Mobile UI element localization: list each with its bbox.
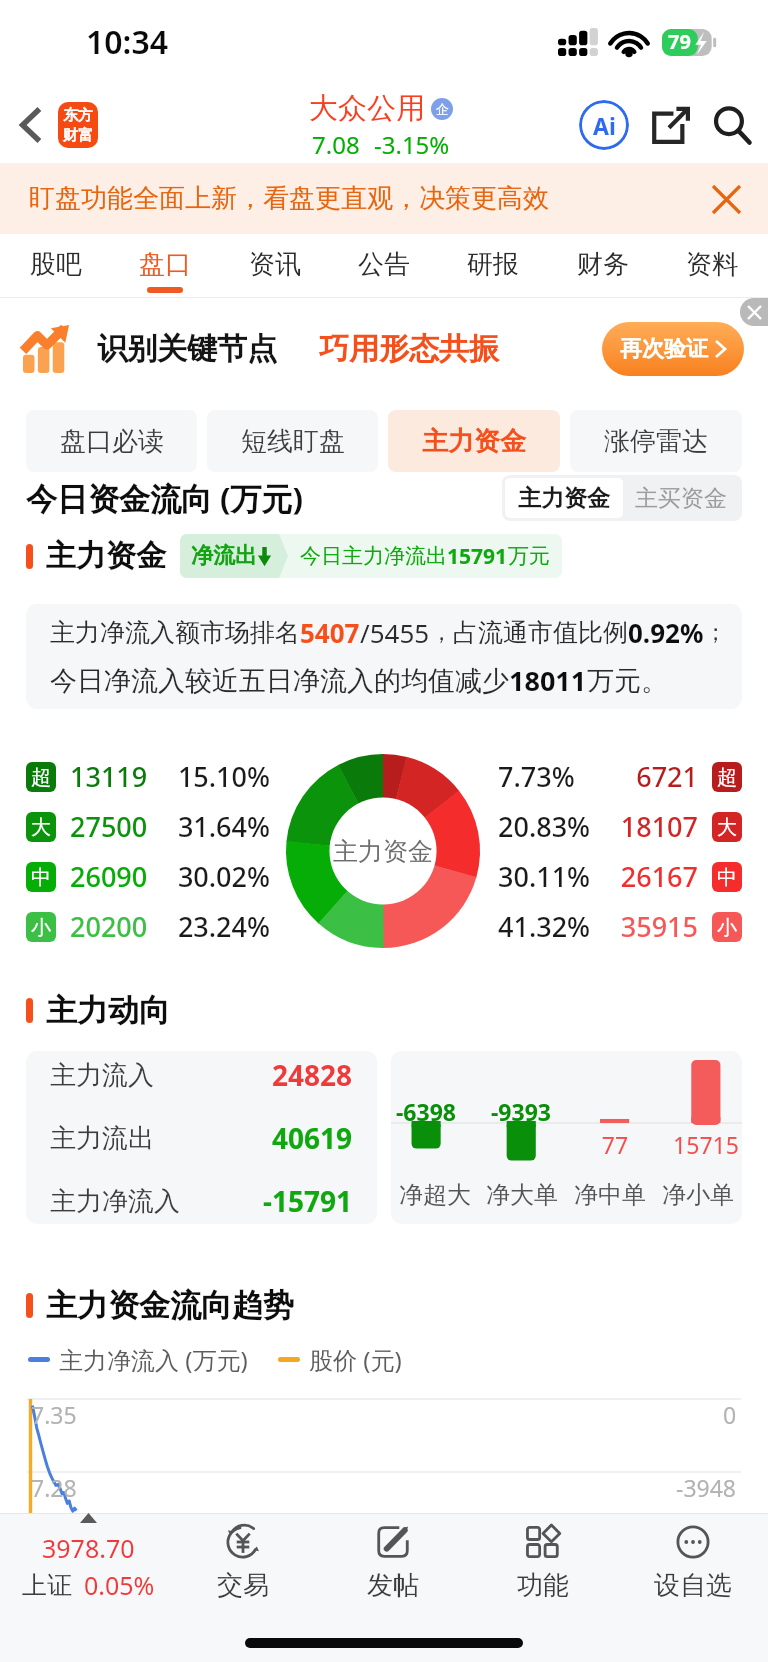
staticText: 净超大	[399, 1180, 471, 1210]
staticText: 资讯	[249, 248, 301, 281]
staticText: 主力资金	[422, 425, 526, 458]
button[interactable]: AI assistant	[576, 97, 632, 153]
staticText: 主力流入	[50, 1059, 154, 1092]
staticText: 净小单	[662, 1180, 734, 1210]
staticText: 41.32%	[498, 908, 598, 945]
staticText: 7.73%	[498, 758, 598, 795]
staticText: 79	[668, 28, 691, 55]
button[interactable]: 主力资金	[388, 410, 560, 472]
staticText: 股价 (元)	[309, 1343, 402, 1376]
button[interactable]: 功能	[468, 1512, 618, 1610]
button[interactable]: 交易	[168, 1512, 318, 1610]
staticText: 0.92%	[628, 615, 704, 650]
button[interactable]: 资讯	[249, 234, 301, 298]
staticText: 涨停雷达	[604, 425, 708, 458]
staticText: 26090	[70, 858, 170, 895]
staticText: 主力资金	[46, 537, 166, 575]
staticText: 研报	[467, 248, 519, 281]
button[interactable]: 股吧	[30, 234, 82, 298]
staticText: 40619	[272, 1119, 353, 1157]
staticText: 10:34	[86, 20, 169, 64]
button[interactable]: Close ad	[740, 298, 768, 326]
staticText: 主力资金	[333, 836, 433, 867]
button[interactable]: 发帖	[318, 1512, 468, 1610]
button[interactable]: 公告	[358, 234, 410, 298]
button[interactable]: 涨停雷达	[570, 410, 742, 472]
button[interactable]: 盯盘功能全面上新，看盘更直观，决策更高效	[0, 163, 768, 234]
staticText: 18011	[509, 662, 587, 699]
staticText: 主力净流入 (万元)	[59, 1343, 248, 1376]
staticText: 企	[436, 101, 449, 117]
staticText: 24828	[272, 1056, 353, 1094]
staticText: 主力流出	[50, 1122, 154, 1155]
staticText: 中	[717, 865, 737, 890]
button[interactable]: 再次验证	[602, 322, 744, 376]
staticText: ，	[430, 618, 453, 647]
staticText: 再次验证	[620, 335, 708, 363]
staticText: 上证	[22, 1570, 72, 1601]
staticText: 盯盘功能全面上新，看盘更直观，决策更高效	[29, 182, 549, 215]
staticText: 大众公用	[309, 90, 425, 127]
button[interactable]: Share	[642, 97, 698, 153]
staticText: 占流通市值比例	[453, 617, 628, 648]
button[interactable]: 资料	[686, 234, 738, 298]
staticText: 公告	[358, 248, 410, 281]
button[interactable]: East Money home	[58, 102, 98, 148]
staticText: 巧用形态共振	[319, 330, 499, 368]
staticText: 今日主力净流出	[300, 543, 447, 569]
staticText: 主力资金	[518, 484, 610, 513]
staticText: /5455	[360, 615, 430, 650]
button[interactable]: Back	[8, 102, 54, 148]
staticText: 短线盯盘	[241, 425, 345, 458]
staticText: 东方	[63, 106, 93, 125]
button[interactable]: 设自选	[618, 1512, 768, 1610]
button[interactable]: 短线盯盘	[207, 410, 378, 472]
button[interactable]: 财务	[577, 234, 629, 298]
staticText: 超	[717, 765, 737, 790]
staticText: 今日净流入较近五日净流入的均值减少	[50, 664, 509, 698]
staticText: 20.83%	[498, 808, 598, 845]
staticText: 18107	[598, 808, 698, 845]
button[interactable]: Search	[704, 97, 760, 153]
staticText: 大	[717, 815, 737, 840]
staticText: 盘口	[139, 248, 191, 281]
staticText: 万元。	[587, 664, 668, 698]
staticText: 净中单	[574, 1180, 646, 1210]
staticText: 净流出	[191, 542, 257, 570]
button[interactable]: 主买资金	[635, 478, 727, 518]
staticText: 27500	[70, 808, 170, 845]
staticText: 3978.70	[42, 1531, 135, 1565]
staticText: 主力动向	[46, 991, 170, 1030]
staticText: 小	[31, 915, 51, 940]
staticText: 13119	[70, 758, 170, 795]
staticText: 35915	[598, 908, 698, 945]
staticText: 23.24%	[170, 908, 270, 945]
staticText: 大	[31, 815, 51, 840]
staticText: 7.28	[31, 1472, 77, 1503]
staticText: 15.10%	[170, 758, 270, 795]
staticText: 万元	[508, 543, 550, 569]
staticText: 30.11%	[498, 858, 598, 895]
staticText: -3948	[676, 1472, 737, 1503]
button[interactable]: 研报	[467, 234, 519, 298]
staticText: 15791	[447, 542, 508, 571]
staticText: 主力资金流向趋势	[46, 1286, 294, 1325]
staticText: 20200	[70, 908, 170, 945]
staticText: -3.15%	[374, 128, 450, 161]
staticText: 识别关键节点	[97, 330, 277, 368]
button[interactable]: 3978.70	[4, 1508, 172, 1606]
staticText: 6721	[598, 758, 698, 795]
staticText: 小	[717, 915, 737, 940]
staticText: 盘口必读	[60, 425, 164, 458]
staticText: 26167	[598, 858, 698, 895]
button[interactable]: 主力资金	[518, 478, 610, 518]
staticText: 资料	[686, 248, 738, 281]
staticText: 7.08	[312, 128, 360, 161]
staticText: 主买资金	[635, 484, 727, 513]
staticText: 超	[31, 765, 51, 790]
button[interactable]: 盘口必读	[26, 410, 197, 472]
button[interactable]: 盘口	[139, 234, 191, 298]
staticText: 今日资金流向 (万元)	[26, 477, 304, 519]
button[interactable]: Close banner	[704, 177, 748, 221]
staticText: 发帖	[367, 1569, 419, 1602]
